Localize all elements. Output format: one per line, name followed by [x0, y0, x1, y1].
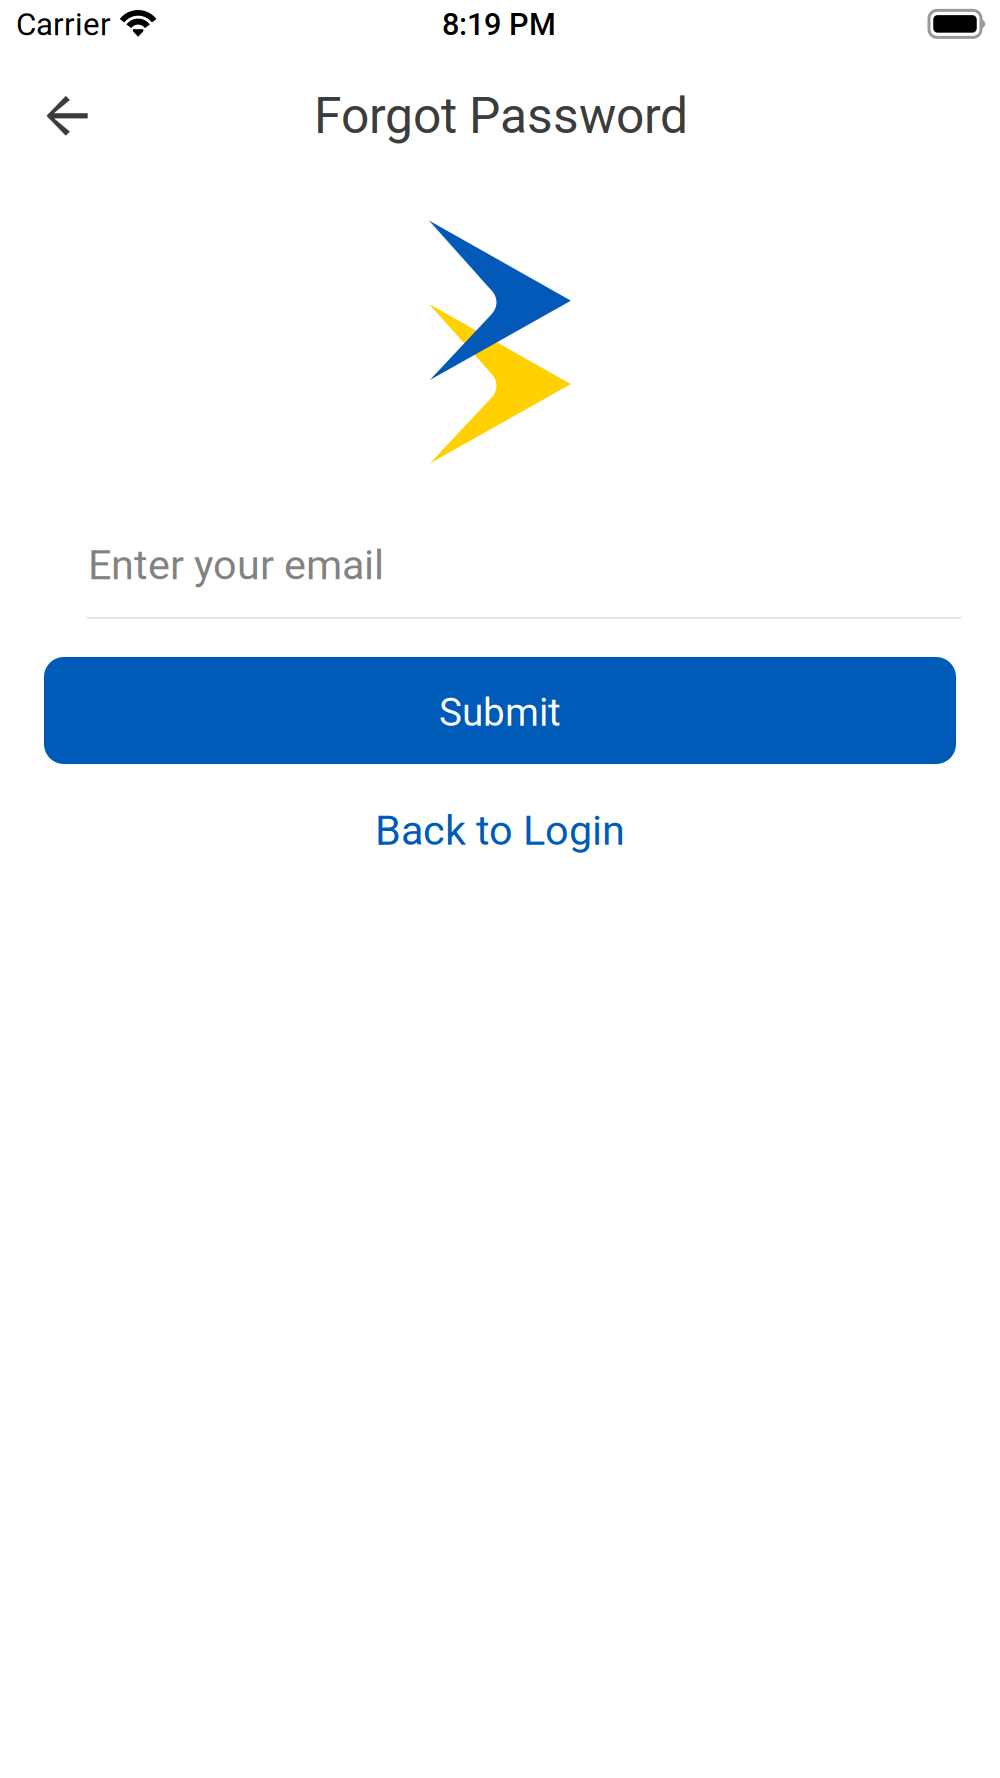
button[interactable]: Submit [44, 657, 956, 764]
staticText: 8:19 PM [442, 6, 556, 42]
textField[interactable]: Enter your email [87, 537, 961, 619]
staticText: Forgot Password [314, 87, 688, 145]
staticText: Enter your email [88, 541, 384, 589]
staticText: Back to Login [375, 806, 625, 855]
button[interactable]: Back to Login [350, 785, 650, 875]
button[interactable]: Back [23, 72, 111, 160]
staticText: Submit [439, 690, 561, 735]
staticText: Carrier [16, 6, 111, 43]
